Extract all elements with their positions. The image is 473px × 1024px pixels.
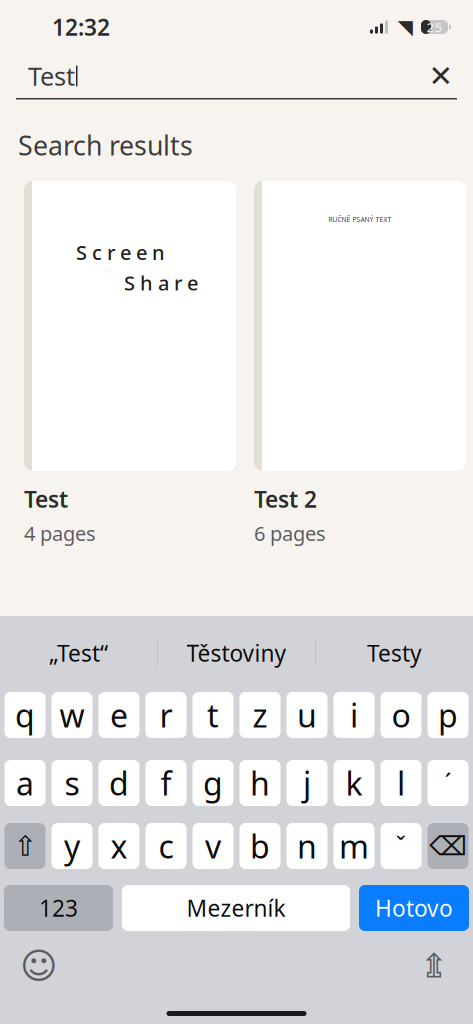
button[interactable]: z — [239, 692, 280, 738]
button[interactable]: S c r e e n — [24, 181, 236, 547]
staticText: c — [158, 825, 173, 867]
button[interactable]: Dictation — [407, 945, 461, 987]
staticText: i — [350, 694, 358, 736]
staticText: Těstoviny — [186, 638, 286, 668]
button[interactable]: Testy — [316, 630, 473, 676]
button[interactable]: Emoji — [12, 945, 66, 987]
staticText: S h a r e — [124, 269, 198, 296]
button[interactable]: s — [51, 760, 92, 806]
staticText: ⇭ — [420, 947, 448, 985]
staticText: e — [110, 694, 128, 736]
button[interactable]: Shift — [4, 823, 45, 869]
button[interactable]: Hotovo — [359, 885, 469, 931]
staticText: f — [160, 762, 171, 804]
staticText: Search results — [18, 127, 193, 163]
button[interactable]: g — [192, 760, 233, 806]
staticText: g — [203, 762, 223, 804]
button[interactable]: „Test“ — [0, 630, 157, 676]
staticText: ✕ — [428, 59, 453, 93]
button[interactable]: ˇ — [380, 823, 421, 869]
staticText: w — [59, 694, 84, 736]
staticText: ⇧ — [13, 830, 36, 862]
staticText: r — [159, 694, 172, 736]
button[interactable]: q — [4, 692, 45, 738]
staticText: 6 pages — [254, 520, 326, 547]
staticText: k — [345, 762, 362, 804]
button[interactable]: w — [51, 692, 92, 738]
button[interactable]: RUČNĚ PSANÝ TEXT — [254, 181, 466, 547]
staticText: ⌫ — [429, 831, 467, 861]
button[interactable]: v — [192, 823, 233, 869]
staticText: Testy — [367, 638, 422, 668]
staticText: Test — [28, 59, 75, 93]
button[interactable]: Těstoviny — [158, 630, 315, 676]
staticText: n — [297, 825, 317, 867]
button[interactable]: h — [239, 760, 280, 806]
staticText: y — [64, 825, 80, 867]
button[interactable]: 123 — [4, 885, 113, 931]
staticText: ☺ — [20, 946, 58, 986]
button[interactable]: i — [333, 692, 374, 738]
button[interactable]: c — [145, 823, 186, 869]
button[interactable]: m — [333, 823, 374, 869]
staticText: Hotovo — [375, 893, 453, 923]
button[interactable]: a — [4, 760, 45, 806]
button[interactable]: r — [145, 692, 186, 738]
button[interactable]: ´ — [427, 760, 468, 806]
staticText: Test 2 — [254, 484, 317, 514]
staticText: „Test“ — [49, 638, 108, 668]
staticText: v — [205, 825, 221, 867]
staticText: 25 — [426, 18, 442, 36]
button[interactable]: e — [98, 692, 139, 738]
button[interactable]: b — [239, 823, 280, 869]
staticText: ◥ — [397, 16, 412, 38]
staticText: x — [110, 825, 127, 867]
button[interactable]: Clear search — [419, 56, 463, 96]
button[interactable]: Delete — [427, 823, 468, 869]
button[interactable]: u — [286, 692, 327, 738]
staticText: o — [391, 694, 410, 736]
staticText: q — [15, 694, 35, 736]
button[interactable]: d — [98, 760, 139, 806]
staticText: ´ — [444, 766, 451, 800]
staticText: a — [16, 762, 34, 804]
staticText: 123 — [39, 893, 78, 923]
button[interactable]: n — [286, 823, 327, 869]
staticText: Test — [24, 484, 68, 514]
button[interactable]: j — [286, 760, 327, 806]
button[interactable]: l — [380, 760, 421, 806]
button[interactable]: f — [145, 760, 186, 806]
staticText: ˇ — [395, 829, 406, 863]
staticText: 12:32 — [52, 12, 110, 42]
staticText: b — [250, 825, 270, 867]
staticText: z — [252, 694, 267, 736]
staticText: d — [109, 762, 129, 804]
staticText: h — [250, 762, 270, 804]
button[interactable]: k — [333, 760, 374, 806]
button[interactable]: t — [192, 692, 233, 738]
staticText: j — [303, 762, 311, 804]
button[interactable]: Mezerník — [122, 885, 350, 931]
button[interactable]: p — [427, 692, 468, 738]
staticText: t — [207, 694, 219, 736]
button[interactable]: o — [380, 692, 421, 738]
staticText: p — [438, 694, 458, 736]
button[interactable]: y — [51, 823, 92, 869]
staticText: m — [339, 825, 369, 867]
button[interactable]: x — [98, 823, 139, 869]
staticText: Mezerník — [186, 893, 285, 923]
staticText: S c r e e n — [76, 239, 165, 265]
staticText: RUČNĚ PSANÝ TEXT — [328, 215, 391, 224]
staticText: u — [297, 694, 317, 736]
staticText: l — [397, 762, 405, 804]
staticText: 4 pages — [24, 520, 96, 547]
staticText: s — [64, 762, 79, 804]
